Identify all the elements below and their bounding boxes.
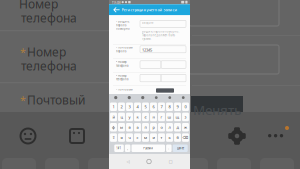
staticText: е <box>144 114 146 120</box>
staticText: г <box>160 114 162 120</box>
staticText: • Номер телефона <box>116 74 128 81</box>
staticText: б <box>176 135 178 140</box>
staticText: Менять <box>193 101 241 119</box>
staticText: 5 <box>144 104 146 109</box>
staticText: ж <box>184 125 187 130</box>
staticText: п <box>144 125 146 130</box>
staticText: 2 <box>120 104 122 109</box>
staticText: ы <box>120 125 123 130</box>
staticText: д <box>176 125 178 130</box>
staticText: Русский <box>143 146 153 150</box>
staticText: я <box>120 135 122 140</box>
staticText: 7 <box>160 104 162 109</box>
staticText: у <box>128 114 130 120</box>
staticText: з <box>184 114 186 120</box>
staticText: * <box>20 93 26 107</box>
staticText: ⌫ <box>182 135 188 140</box>
staticText: р <box>152 125 154 130</box>
staticText: н <box>152 114 154 120</box>
staticText: ш <box>167 114 171 120</box>
staticText: щ <box>175 114 179 120</box>
staticText: телефона <box>21 58 77 74</box>
staticText: • Почтовый <box>116 88 133 91</box>
staticText: 12345 <box>142 47 152 53</box>
staticText: Почтовый <box>27 92 85 108</box>
staticText: , <box>127 146 128 150</box>
staticText: 0 <box>184 104 186 109</box>
staticText: * <box>20 45 26 59</box>
staticText: ф <box>112 125 115 130</box>
staticText: Введите пароль повторно. Пароль не долже… <box>141 30 179 40</box>
staticText: Регистрация учетной записи <box>121 7 177 12</box>
staticText: Номер <box>19 0 58 12</box>
staticText: 19:48 <box>111 0 120 5</box>
staticText: м <box>144 135 147 140</box>
staticText: 6 <box>152 104 154 109</box>
staticText: Номер <box>27 44 66 60</box>
staticText: и <box>152 135 154 140</box>
staticText: ⇧ <box>112 135 115 140</box>
staticText: 1 <box>112 104 114 109</box>
staticText: ц <box>120 114 122 120</box>
staticText: Введите <box>142 21 153 25</box>
staticText: ч <box>128 135 130 140</box>
staticText: ь <box>168 135 170 140</box>
staticText: 4 <box>136 104 138 109</box>
staticText: □ <box>169 159 173 164</box>
staticText: • Введите пароль повторно <box>116 20 130 30</box>
staticText: • Почтовый пароль <box>116 46 133 53</box>
staticText: 9 <box>176 104 178 109</box>
staticText: • Номер телефона <box>116 60 128 67</box>
staticText: т <box>160 135 162 140</box>
staticText: телефона <box>21 10 77 26</box>
staticText: о <box>160 125 162 130</box>
staticText: л <box>168 125 170 130</box>
staticText: й <box>112 114 114 120</box>
staticText: !#1 <box>116 146 121 150</box>
staticText: а <box>136 125 138 130</box>
staticText: . <box>168 146 169 150</box>
staticText: к <box>136 114 138 120</box>
staticText: Далее <box>177 146 184 150</box>
staticText: 3 <box>128 104 130 109</box>
staticText: 8 <box>168 104 170 109</box>
staticText: ◁ <box>126 159 129 164</box>
staticText: с <box>136 135 138 140</box>
staticText: в <box>128 125 130 130</box>
